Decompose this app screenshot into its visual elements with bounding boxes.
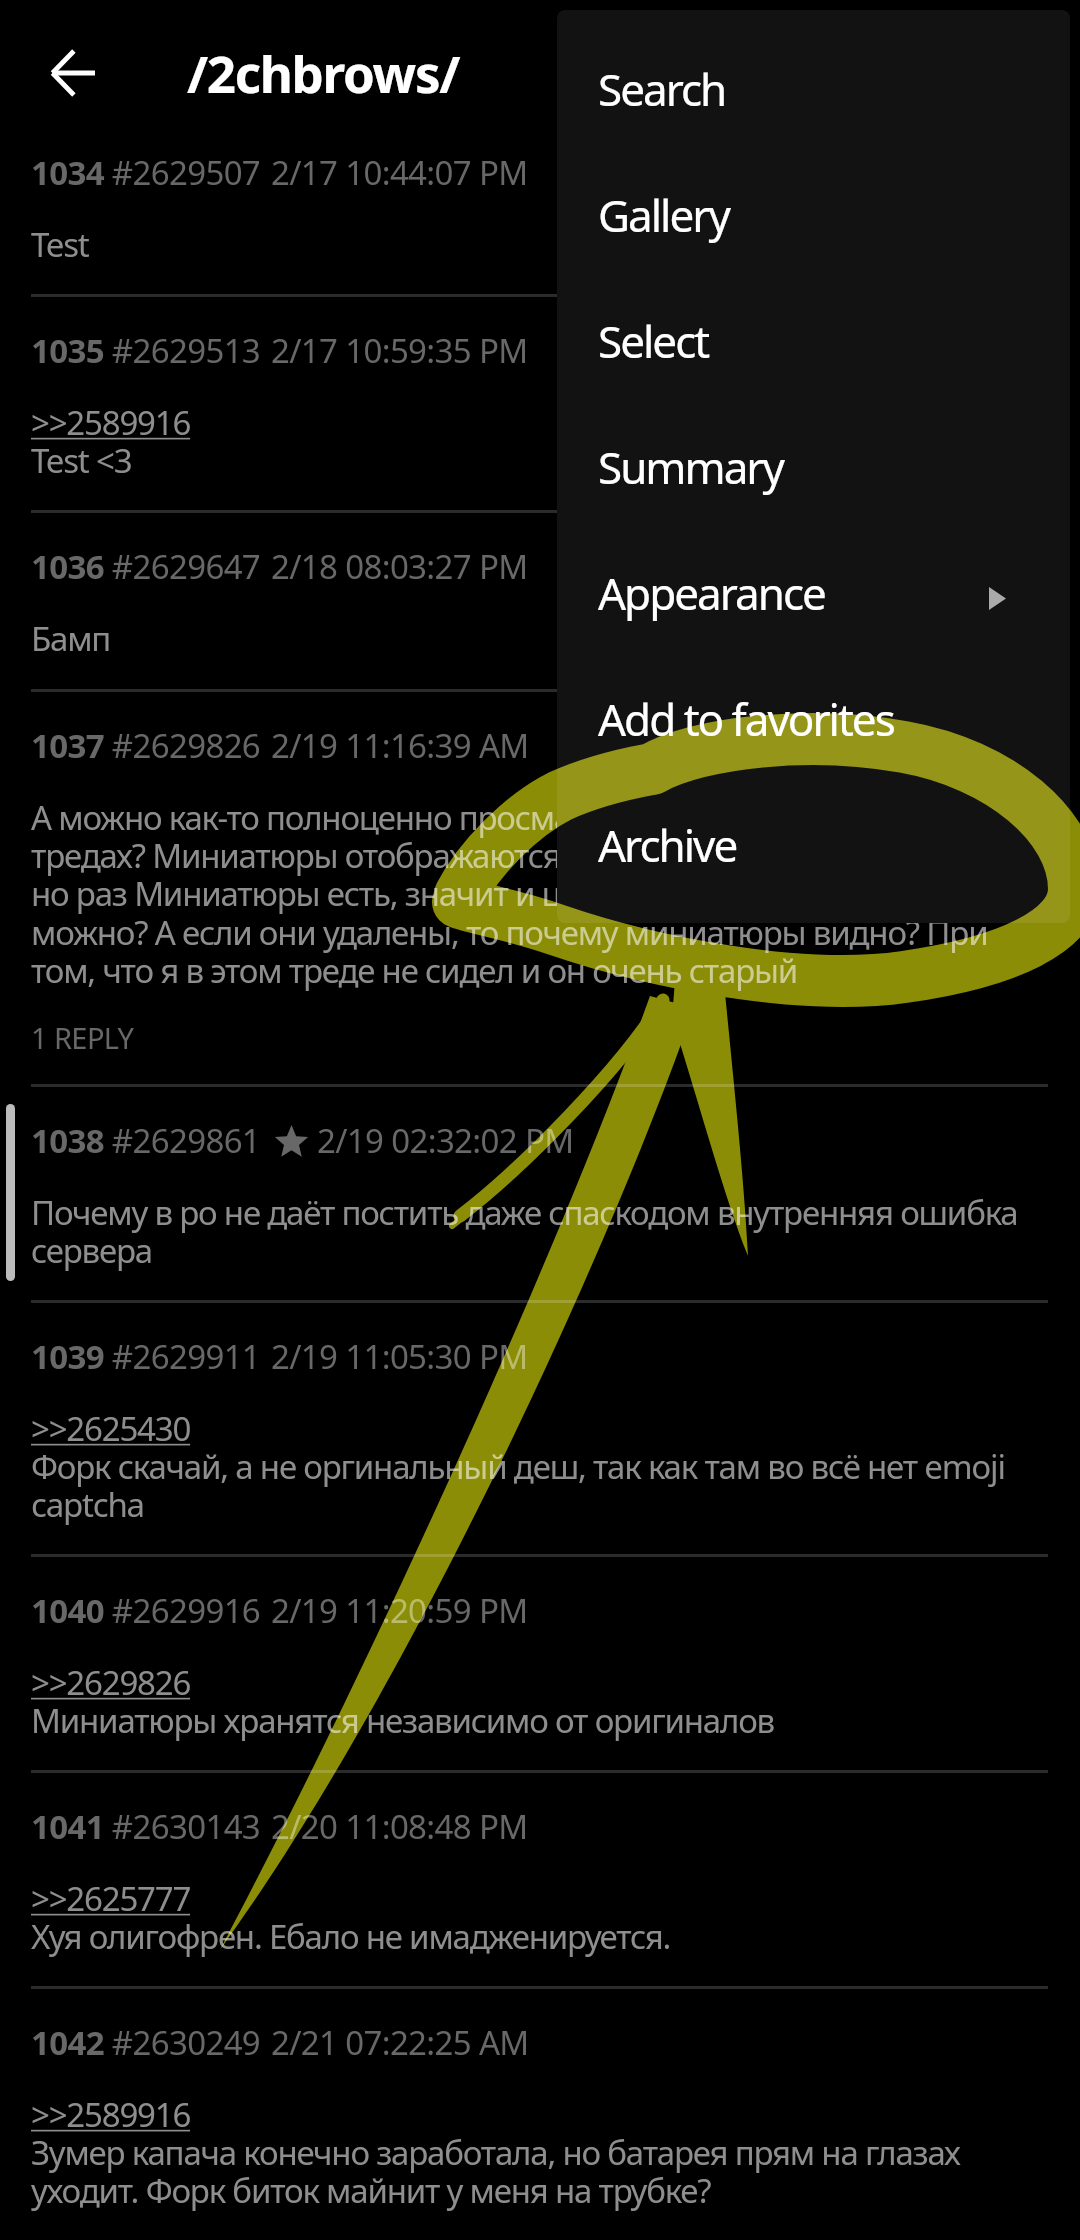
staticText: Select bbox=[598, 311, 709, 371]
staticText: 1038 #2629861 bbox=[31, 1118, 261, 1163]
staticText: 2/17 10:44:07 PM bbox=[271, 150, 528, 195]
staticText: сервера bbox=[31, 1228, 152, 1273]
staticText: Миниатюры хранятся независимо от оригина… bbox=[31, 1698, 774, 1743]
staticText: 1039 #2629911 bbox=[31, 1334, 261, 1379]
staticText: 2/20 11:08:48 PM bbox=[271, 1804, 528, 1849]
button[interactable] bbox=[557, 263, 1070, 389]
staticText: но раз Миниатюры есть, значит и цензуры … bbox=[31, 871, 900, 916]
staticText: 1037 #2629826 bbox=[31, 723, 261, 768]
button[interactable] bbox=[0, 691, 1080, 1086]
staticText: captcha bbox=[31, 1482, 144, 1527]
staticText: Gallery bbox=[598, 185, 729, 245]
staticText: Test bbox=[31, 222, 89, 267]
staticText: 2/18 08:03:27 PM bbox=[271, 544, 528, 589]
staticText: уходит. Форк биток майнит у меня на труб… bbox=[31, 2168, 711, 2213]
staticText: Форк скачай, а не оргинальный деш, так к… bbox=[31, 1444, 1005, 1489]
staticText: Бамп bbox=[31, 616, 111, 661]
staticText: 1036 #2629647 bbox=[31, 544, 261, 589]
staticText: 1035 #2629513 bbox=[31, 328, 261, 373]
button[interactable] bbox=[0, 1302, 1080, 1556]
button[interactable] bbox=[0, 512, 1080, 691]
staticText: 1034 #2629507 bbox=[31, 150, 261, 195]
button[interactable] bbox=[0, 1556, 1080, 1772]
staticText: А можно как-то полноценно просматривать … bbox=[31, 795, 1014, 840]
button[interactable] bbox=[557, 11, 1070, 137]
staticText: 1040 #2629916 bbox=[31, 1588, 261, 1633]
button[interactable] bbox=[0, 1772, 1080, 1988]
staticText: 1041 #2630143 bbox=[31, 1804, 261, 1849]
staticText: 2/19 11:20:59 PM bbox=[271, 1588, 528, 1633]
staticText: Хуя олигофрен. Ебало не имадженируется. bbox=[31, 1914, 671, 1959]
button[interactable] bbox=[0, 1086, 1080, 1302]
staticText: можно? А если они удалены, то почему мин… bbox=[31, 910, 988, 955]
staticText: 2/19 11:05:30 PM bbox=[271, 1334, 528, 1379]
staticText: >>2625430 bbox=[31, 1406, 191, 1451]
button[interactable] bbox=[0, 296, 1080, 512]
staticText: Test <3 bbox=[31, 438, 132, 483]
staticText: >>2629826 bbox=[31, 1660, 191, 1705]
button[interactable] bbox=[557, 767, 1070, 893]
staticText: /2chbrows/ bbox=[187, 38, 460, 107]
staticText: Archive bbox=[598, 815, 737, 875]
staticText: 2/19 11:16:39 AM bbox=[271, 723, 529, 768]
staticText: том, что я в этом треде не сидел и он оч… bbox=[31, 948, 798, 993]
staticText: >>2625777 bbox=[31, 1876, 191, 1921]
staticText: >>2589916 bbox=[31, 2092, 191, 2137]
button[interactable] bbox=[0, 1988, 1080, 2240]
staticText: Search bbox=[598, 59, 726, 119]
button[interactable] bbox=[557, 515, 1070, 641]
button[interactable] bbox=[557, 389, 1070, 515]
staticText: Зумер капача конечно заработала, но бата… bbox=[31, 2130, 960, 2175]
staticText: 2/17 10:59:35 PM bbox=[271, 328, 528, 373]
staticText: Почему в ро не даёт постить даже спаскод… bbox=[31, 1190, 1018, 1235]
staticText: Add to favorites bbox=[598, 689, 894, 749]
staticText: тредах? Миниатюры отображаются, а сами к… bbox=[31, 833, 887, 878]
staticText: Summary bbox=[598, 437, 783, 497]
staticText: >>2589916 bbox=[31, 400, 191, 445]
button[interactable] bbox=[557, 641, 1070, 767]
staticText: 2/19 02:32:02 PM bbox=[317, 1118, 574, 1163]
staticText: 1 REPLY bbox=[31, 1018, 134, 1057]
staticText: 2/21 07:22:25 AM bbox=[271, 2020, 529, 2065]
button[interactable]: Back bbox=[20, 20, 126, 126]
staticText: 1042 #2630249 bbox=[31, 2020, 261, 2065]
button[interactable] bbox=[557, 137, 1070, 263]
staticText: Appearance bbox=[598, 563, 825, 623]
button[interactable] bbox=[0, 118, 1080, 296]
